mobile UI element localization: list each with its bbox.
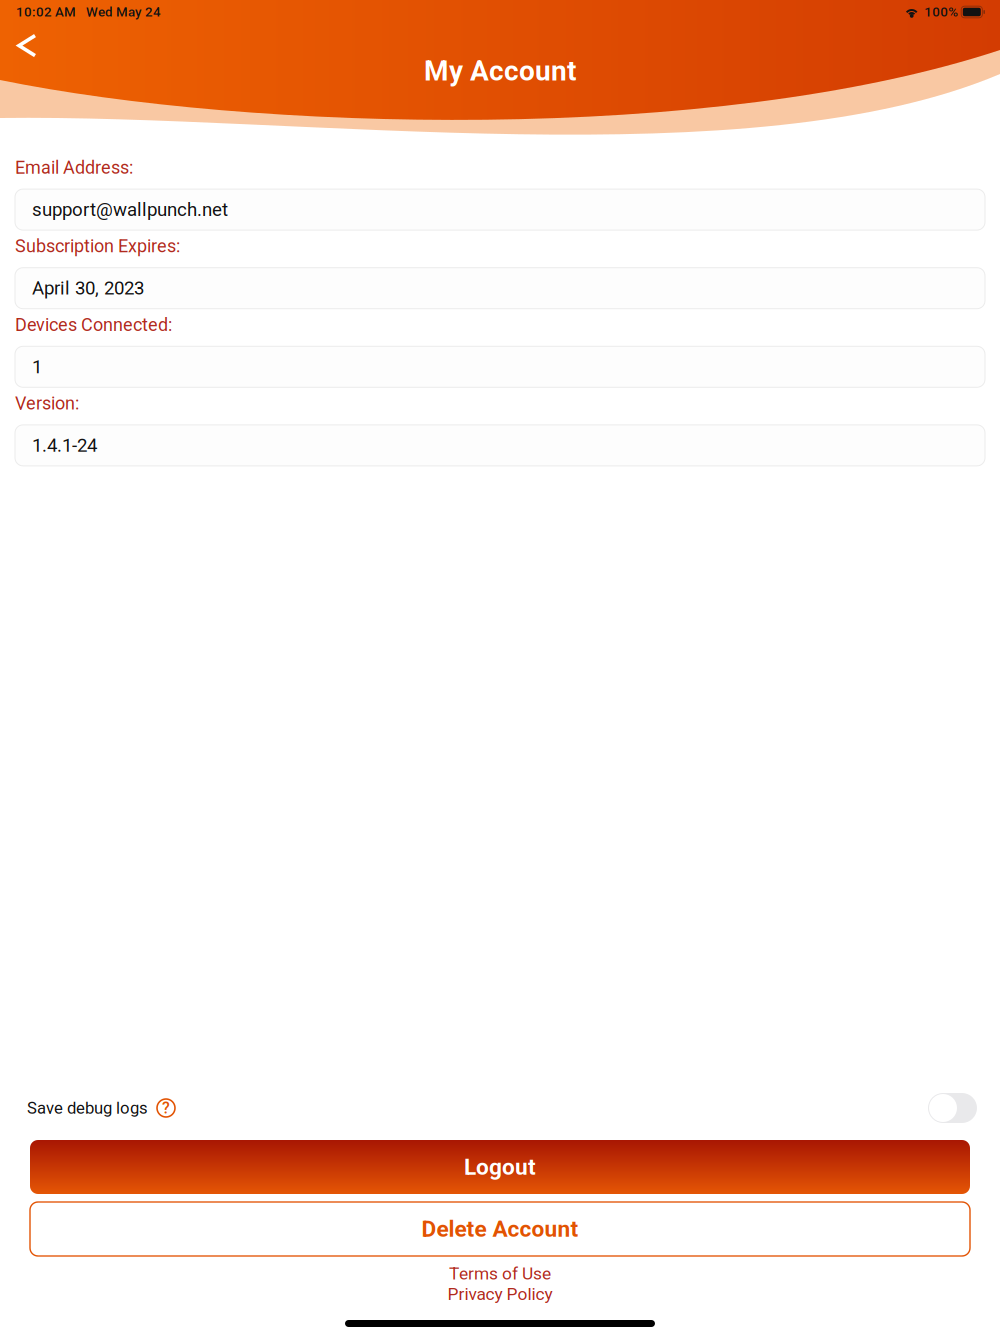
- button[interactable]: Delete Account: [0, 1194, 1000, 1256]
- staticText: Devices Connected:: [15, 314, 172, 335]
- staticText: Subscription Expires:: [15, 236, 180, 257]
- button[interactable]: Logout: [0, 1123, 1000, 1194]
- staticText: My Account: [424, 55, 576, 87]
- staticText: Version:: [15, 393, 79, 414]
- staticText: 1: [32, 356, 42, 378]
- button[interactable]: Save debug logs: [928, 1093, 977, 1123]
- staticText: Terms of Use: [449, 1263, 551, 1284]
- staticText: 100%: [924, 4, 958, 20]
- staticText: Privacy Policy: [447, 1284, 552, 1304]
- staticText: support@wallpunch.net: [32, 199, 228, 221]
- staticText: Email Address:: [15, 157, 133, 178]
- staticText: Delete Account: [421, 1216, 578, 1242]
- button[interactable]: Back: [0, 23, 51, 75]
- staticText: 1.4.1-24: [32, 434, 97, 456]
- staticText: Wed May 24: [86, 4, 161, 20]
- staticText: April 30, 2023: [32, 277, 144, 299]
- staticText: Save debug logs: [27, 1098, 148, 1118]
- button[interactable]: Privacy Policy: [447, 1284, 552, 1304]
- staticText: 10:02 AM: [16, 4, 76, 20]
- staticText: ?: [162, 1099, 170, 1117]
- button[interactable]: Terms of Use: [449, 1256, 551, 1284]
- staticText: Logout: [464, 1154, 536, 1180]
